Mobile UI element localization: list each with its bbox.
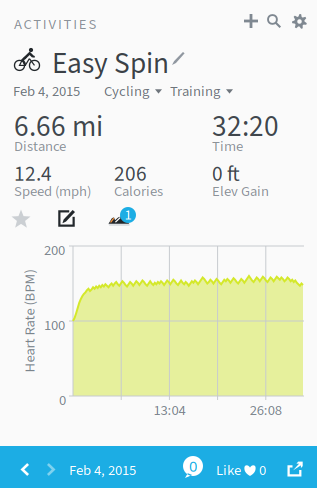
staticText: Heart Rate (BPM) bbox=[0, 311, 81, 331]
button[interactable]: Cycling bbox=[104, 81, 162, 102]
button[interactable]: Gear bbox=[105, 212, 133, 230]
staticText: 26:08 bbox=[250, 400, 282, 421]
staticText: Cycling bbox=[104, 81, 149, 102]
button[interactable]: Previous activity bbox=[16, 460, 35, 479]
staticText: ACTIVITIES bbox=[14, 14, 96, 35]
button[interactable]: Comments bbox=[183, 456, 203, 476]
staticText: 6.66 mi bbox=[14, 106, 103, 148]
staticText: 0 bbox=[189, 456, 197, 476]
button[interactable]: Training bbox=[170, 81, 233, 102]
staticText: Speed (mph) bbox=[14, 181, 91, 202]
staticText: 206 bbox=[114, 159, 147, 189]
staticText: 0 bbox=[259, 460, 266, 481]
button[interactable]: Feb 4, 2015 bbox=[69, 460, 136, 481]
button[interactable]: Favorite bbox=[8, 206, 34, 232]
staticText: Time bbox=[212, 136, 243, 157]
staticText: 100 bbox=[44, 315, 65, 336]
staticText: Feb 4, 2015 bbox=[69, 460, 136, 481]
button[interactable]: Next activity bbox=[41, 460, 60, 479]
button[interactable]: Edit activity bbox=[55, 207, 78, 230]
staticText: Like bbox=[216, 460, 241, 481]
staticText: Elev Gain bbox=[212, 181, 269, 202]
staticText: Training bbox=[170, 81, 220, 102]
button[interactable]: Search bbox=[263, 10, 285, 32]
button[interactable]: Add activity bbox=[240, 10, 262, 32]
button[interactable]: Edit workout name bbox=[169, 49, 188, 68]
button[interactable]: Like bbox=[216, 460, 266, 481]
staticText: Calories bbox=[114, 181, 163, 202]
staticText: 200 bbox=[44, 240, 65, 261]
staticText: Distance bbox=[14, 136, 66, 157]
staticText: 0 bbox=[59, 390, 66, 411]
staticText: Feb 4, 2015 bbox=[13, 81, 80, 102]
staticText: 0 ft bbox=[212, 159, 240, 189]
button[interactable]: Settings bbox=[288, 10, 311, 33]
staticText: 13:04 bbox=[153, 400, 185, 421]
button[interactable]: Share bbox=[286, 459, 305, 478]
staticText: 32:20 bbox=[212, 106, 279, 148]
staticText: 1 bbox=[124, 205, 131, 225]
staticText: Easy Spin bbox=[52, 43, 169, 85]
staticText: 12.4 bbox=[14, 159, 52, 189]
